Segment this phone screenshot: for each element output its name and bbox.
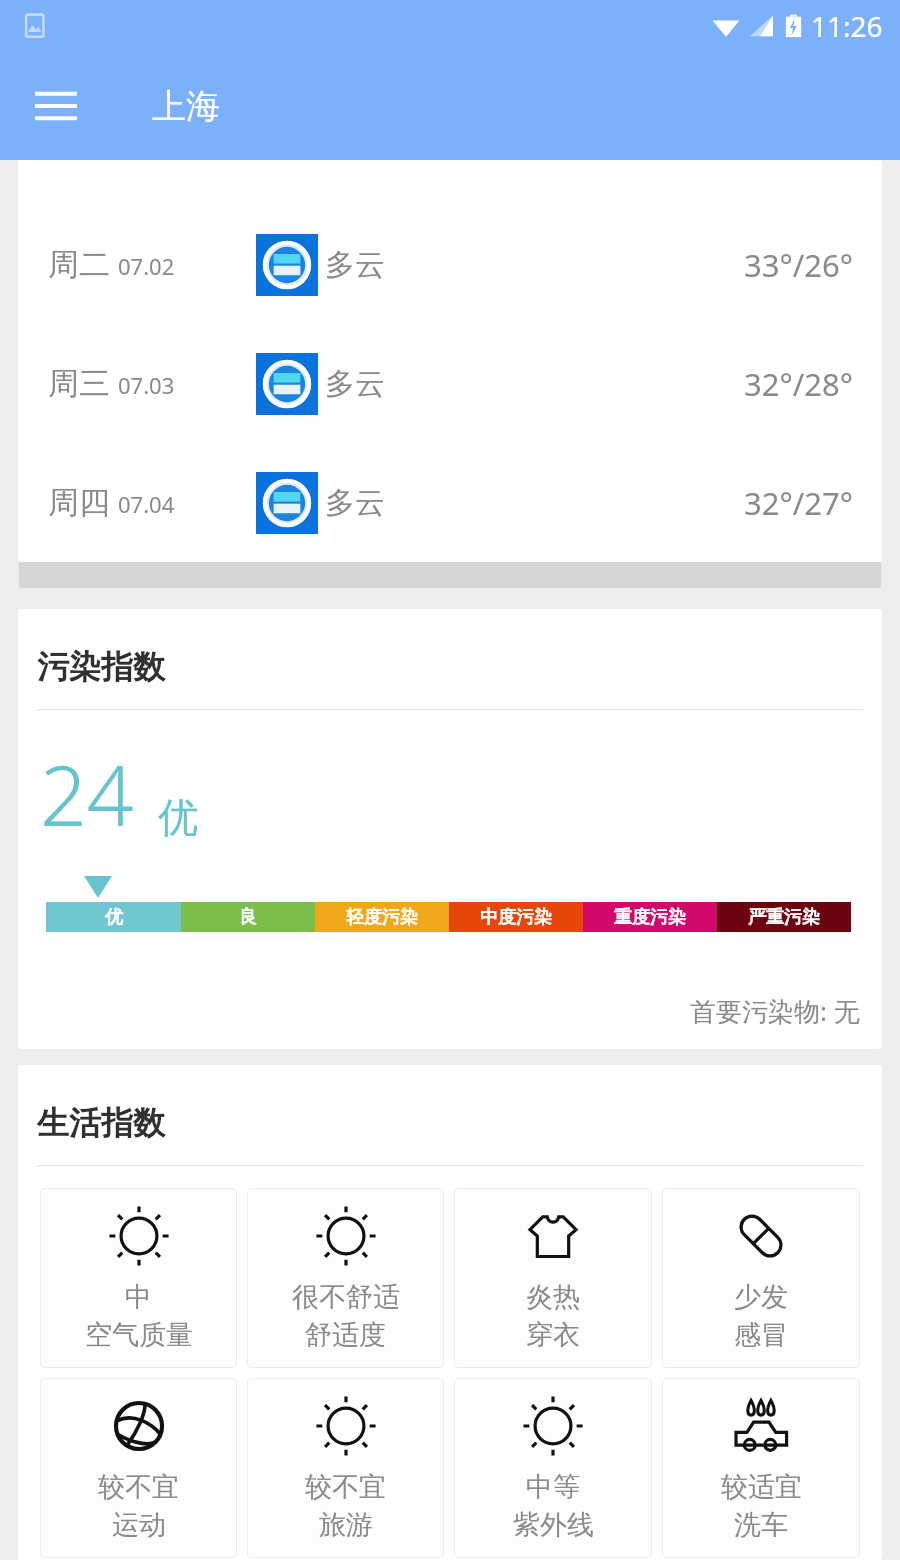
staticText: 较不宜 xyxy=(98,1470,179,1504)
staticText: 周三 xyxy=(48,364,110,403)
staticText: 较不宜 xyxy=(305,1470,386,1504)
button[interactable]: 较不宜 xyxy=(40,1378,237,1558)
staticText: 炎热 xyxy=(526,1280,580,1314)
staticText: 优 xyxy=(158,792,198,842)
staticText: 中度污染 xyxy=(480,906,552,929)
staticText: 舒适度 xyxy=(305,1318,386,1352)
button[interactable]: 很不舒适 xyxy=(247,1188,444,1368)
staticText: 紫外线 xyxy=(513,1508,594,1542)
staticText: 周二 xyxy=(48,245,110,284)
button[interactable]: 较不宜 xyxy=(247,1378,444,1558)
staticText: 07.03 xyxy=(118,370,175,400)
staticText: 运动 xyxy=(112,1508,166,1542)
staticText: 多云 xyxy=(325,484,385,522)
button[interactable]: Open navigation menu xyxy=(26,76,86,136)
button[interactable]: 周二 xyxy=(18,205,882,324)
staticText: 33°/26° xyxy=(744,244,853,286)
button[interactable]: 少发 xyxy=(662,1188,860,1368)
staticText: 旅游 xyxy=(319,1508,373,1542)
staticText: 上海 xyxy=(152,85,220,128)
staticText: 很不舒适 xyxy=(292,1280,400,1314)
staticText: 重度污染 xyxy=(614,906,686,929)
staticText: 中等 xyxy=(526,1470,580,1504)
button[interactable]: 中 xyxy=(40,1188,237,1368)
staticText: 32°/27° xyxy=(744,482,853,524)
staticText: 07.02 xyxy=(118,251,175,281)
staticText: 生活指数 xyxy=(37,1103,165,1143)
button[interactable]: 较适宜 xyxy=(662,1378,860,1558)
staticText: 污染指数 xyxy=(37,647,165,687)
staticText: 多云 xyxy=(325,246,385,284)
staticText: 感冒 xyxy=(734,1318,788,1352)
button[interactable]: 周四 xyxy=(18,443,882,562)
staticText: 多云 xyxy=(325,365,385,403)
staticText: 周四 xyxy=(48,483,110,522)
button[interactable]: 周三 xyxy=(18,324,882,443)
staticText: 穿衣 xyxy=(526,1318,580,1352)
staticText: 11:26 xyxy=(811,7,883,45)
staticText: 24 xyxy=(40,738,134,850)
staticText: 洗车 xyxy=(734,1508,788,1542)
staticText: 32°/28° xyxy=(744,363,853,405)
staticText: 轻度污染 xyxy=(346,906,418,929)
staticText: 07.04 xyxy=(118,489,175,519)
staticText: 较适宜 xyxy=(721,1470,802,1504)
staticText: 良 xyxy=(239,906,257,929)
staticText: 中 xyxy=(125,1280,152,1314)
staticText: 空气质量 xyxy=(85,1318,193,1352)
staticText: 少发 xyxy=(734,1280,788,1314)
staticText: 优 xyxy=(105,906,123,929)
button[interactable]: 中等 xyxy=(454,1378,652,1558)
staticText: 首要污染物: 无 xyxy=(690,993,860,1029)
button[interactable]: 炎热 xyxy=(454,1188,652,1368)
staticText: 严重污染 xyxy=(748,906,820,929)
